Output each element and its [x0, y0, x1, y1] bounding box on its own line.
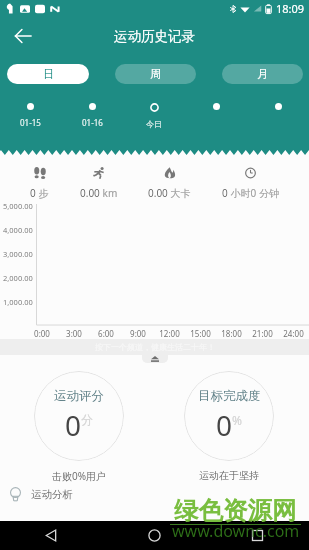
staticText: km — [100, 186, 118, 200]
staticText: 24:00 — [278, 328, 309, 339]
staticText: 0.00 — [80, 186, 100, 200]
button[interactable]: 运动分析 — [10, 483, 309, 505]
staticText: 0:00 — [26, 328, 58, 339]
staticText: 大卡 — [168, 186, 191, 200]
staticText: 步 — [36, 186, 49, 200]
button[interactable]: 今日 — [123, 103, 185, 129]
staticText: 2,000.00 — [3, 273, 33, 283]
staticText: 运动分析 — [31, 488, 73, 501]
staticText: 21:00 — [247, 328, 278, 339]
button[interactable] — [247, 103, 309, 117]
button[interactable]: 0 — [30, 167, 49, 200]
button[interactable]: 运动评分 — [34, 371, 124, 461]
staticText: 4,000.00 — [3, 225, 33, 235]
button[interactable]: 0.00 — [80, 167, 118, 200]
staticText: 运动在于坚持 — [199, 469, 259, 482]
staticText: 绿色资源网 — [174, 495, 297, 526]
button[interactable]: Recent apps — [206, 521, 309, 550]
staticText: 今日 — [146, 119, 162, 129]
staticText: 小时0 分钟 — [228, 186, 279, 200]
staticText: 15:00 — [185, 328, 216, 339]
button[interactable]: 0 — [222, 167, 279, 200]
staticText: 5,000.00 — [3, 201, 33, 211]
staticText: 12:00 — [154, 328, 185, 339]
staticText: 0 — [30, 186, 36, 200]
staticText: 3:00 — [58, 328, 90, 339]
staticText: 周 — [150, 67, 161, 81]
button[interactable]: 01-15 — [0, 103, 61, 128]
staticText: 击败0%用户 — [52, 469, 107, 483]
button[interactable]: 0.00 — [148, 167, 191, 200]
staticText: 目标完成度 — [198, 388, 261, 404]
staticText: 6:00 — [90, 328, 122, 339]
button[interactable]: Expand — [142, 354, 168, 363]
staticText: 1,000.00 — [3, 297, 33, 307]
staticText: 0.00 — [148, 186, 168, 200]
staticText: 01-16 — [82, 117, 103, 128]
button[interactable]: 周 — [115, 64, 196, 84]
button[interactable]: Back — [0, 521, 103, 550]
staticText: 18:09 — [276, 1, 305, 16]
button[interactable]: 月 — [222, 64, 303, 84]
staticText: www.downc.com — [172, 520, 300, 542]
staticText: 3,000.00 — [3, 249, 33, 259]
staticText: % — [232, 412, 242, 428]
button[interactable]: 01-16 — [61, 103, 123, 128]
staticText: 01-15 — [20, 117, 41, 128]
staticText: 运动评分 — [54, 388, 104, 404]
staticText: 月 — [257, 67, 268, 81]
button[interactable]: Home — [103, 521, 206, 550]
staticText: 0 — [216, 406, 233, 444]
staticText: 18:00 — [216, 328, 247, 339]
button[interactable]: Back — [9, 22, 37, 50]
staticText: 0 — [65, 406, 82, 444]
staticText: 日 — [43, 67, 54, 81]
staticText: 9:00 — [122, 328, 154, 339]
button[interactable]: 目标完成度 — [184, 371, 274, 461]
button[interactable]: 日 — [7, 64, 89, 84]
staticText: 运动历史记录 — [114, 28, 195, 45]
button[interactable] — [185, 103, 247, 117]
staticText: 分 — [81, 412, 93, 427]
staticText: 0 — [222, 186, 228, 200]
